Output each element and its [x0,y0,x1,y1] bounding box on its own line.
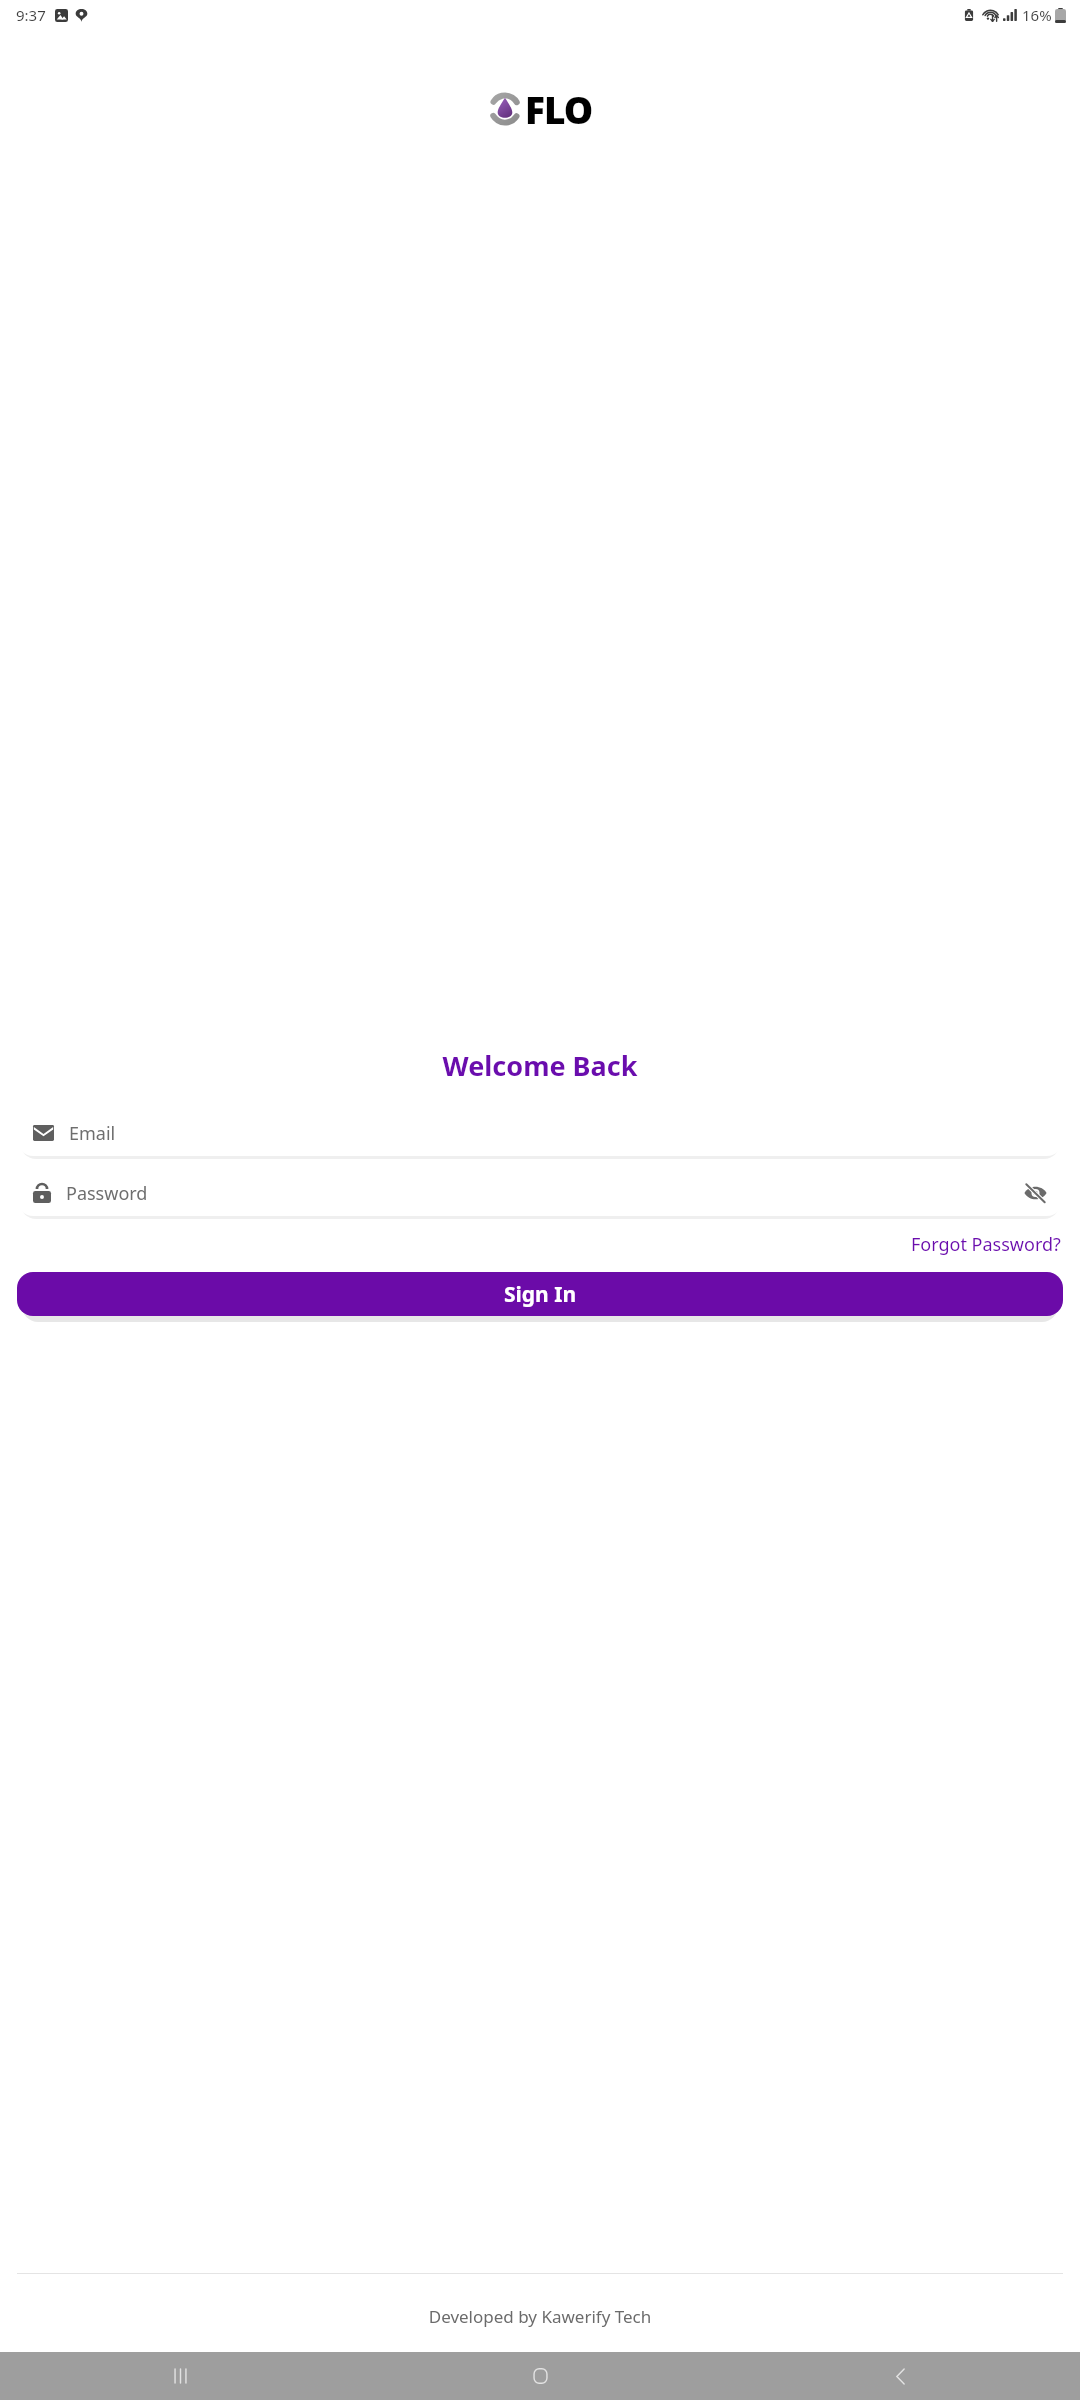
button[interactable]: Home [360,2352,720,2400]
staticText: Forgot Password? [911,1232,1061,1257]
staticText: Password [66,1181,148,1206]
staticText: Welcome Back [0,1047,1080,1084]
staticText: 16% [1022,5,1052,25]
button[interactable]: Email [17,1110,1063,1156]
staticText: 9:37 [16,5,46,25]
staticText: FLO [525,84,593,134]
button[interactable]: Recent apps [0,2352,360,2400]
button[interactable]: Sign In [17,1272,1063,1316]
button[interactable]: Show password [1017,1175,1053,1211]
staticText: Developed by Kawerify Tech [0,2305,1080,2328]
staticText: Sign In [504,1280,577,1309]
button[interactable]: Password [17,1170,1063,1216]
staticText: Email [69,1121,116,1146]
button[interactable]: Forgot Password? [909,1230,1063,1259]
